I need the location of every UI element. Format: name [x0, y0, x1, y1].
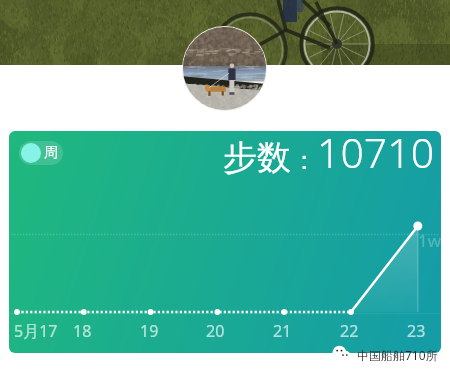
- staticText: 步数: [223, 136, 291, 179]
- staticText: 23: [407, 320, 426, 342]
- staticText: 18: [73, 320, 92, 342]
- button[interactable]: 周: [9, 131, 441, 353]
- button[interactable]: 周: [19, 141, 63, 165]
- staticText: 1w: [418, 229, 441, 252]
- staticText: 周: [44, 144, 58, 162]
- staticText: ：: [291, 144, 317, 177]
- staticText: 22: [340, 320, 359, 342]
- staticText: 20: [206, 320, 225, 342]
- staticText: 中国船舶710所: [357, 347, 438, 363]
- staticText: 5月17: [14, 320, 58, 342]
- staticText: 21: [273, 320, 292, 342]
- staticText: 19: [140, 320, 159, 342]
- button[interactable]: Profile photo: [182, 26, 267, 111]
- staticText: 10710: [317, 131, 435, 180]
